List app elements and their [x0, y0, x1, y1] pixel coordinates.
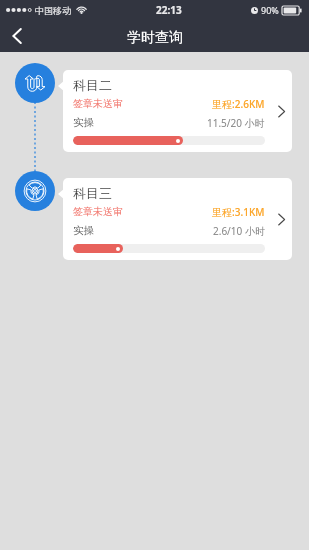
staticText: 科目二: [73, 77, 112, 93]
staticText: 学时查询: [127, 29, 183, 47]
staticText: 签章未送审: [73, 205, 123, 218]
button[interactable]: 科目三: [15, 171, 55, 211]
staticText: 90%: [261, 4, 279, 16]
button[interactable]: 科目三: [63, 178, 292, 260]
button[interactable]: Back: [0, 20, 36, 52]
staticText: 里程:2.6KM: [212, 97, 265, 111]
staticText: 科目三: [73, 185, 112, 201]
staticText: 中国移动: [35, 5, 71, 16]
staticText: 实操: [73, 224, 94, 237]
button[interactable]: 科目二: [63, 70, 292, 152]
staticText: 里程:3.1KM: [212, 205, 265, 219]
staticText: 签章未送审: [73, 97, 123, 110]
staticText: 实操: [73, 116, 94, 129]
staticText: 11.5/20 小时: [207, 116, 265, 130]
staticText: 2.6/10 小时: [213, 224, 265, 238]
button[interactable]: 科目二: [15, 63, 55, 103]
staticText: 22:13: [156, 3, 182, 17]
